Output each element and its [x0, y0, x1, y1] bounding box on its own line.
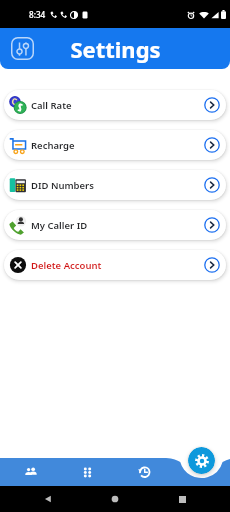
button[interactable]: Contacts [11, 458, 51, 486]
staticText: DID Numbers [31, 179, 94, 192]
button[interactable]: Settings [188, 447, 215, 474]
button[interactable]: Dialpad [67, 458, 107, 486]
staticText: Recharge [31, 139, 75, 152]
button[interactable]: History [124, 458, 164, 486]
staticText: My Caller ID [31, 219, 88, 232]
button[interactable]: My Caller ID [4, 210, 226, 240]
button[interactable]: DID Numbers [4, 170, 226, 200]
staticText: Call Rate [31, 99, 72, 112]
button[interactable]: Call Rate [4, 90, 226, 120]
button[interactable]: Back [40, 491, 56, 507]
staticText: Delete Account [31, 259, 102, 272]
button[interactable]: Recharge [4, 130, 226, 160]
staticText: Settings [70, 34, 161, 64]
button[interactable]: Home [107, 491, 123, 507]
staticText: 8:34 [29, 9, 46, 20]
button[interactable]: Settings options [11, 37, 34, 60]
button[interactable]: Delete Account [4, 250, 226, 280]
button[interactable]: Recents [174, 491, 190, 507]
